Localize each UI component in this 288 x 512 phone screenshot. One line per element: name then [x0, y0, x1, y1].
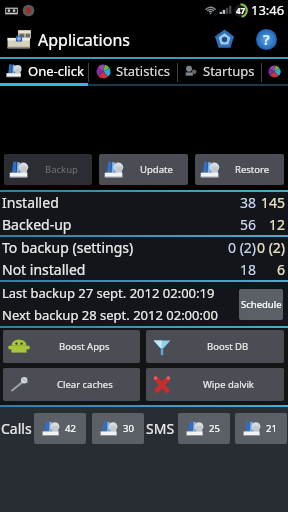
- staticText: 6: [277, 260, 286, 279]
- staticText: Restore: [235, 163, 270, 176]
- staticText: Not installed: [2, 260, 86, 279]
- staticText: Wipe dalvik: [203, 378, 254, 391]
- button[interactable]: Installed: [0, 192, 288, 213]
- button[interactable]: Update: [99, 154, 188, 185]
- button[interactable]: Help: [246, 20, 286, 59]
- button[interactable]: Wipe dalvik: [146, 368, 284, 401]
- button[interactable]: To backup (settings): [0, 237, 288, 258]
- button[interactable]: 21: [235, 413, 287, 444]
- staticText: Update: [140, 163, 173, 176]
- staticText: SMS: [146, 419, 175, 438]
- staticText: 145: [261, 193, 286, 212]
- staticText: Installed: [2, 193, 59, 212]
- staticText: 38: [240, 193, 257, 212]
- staticText: 42: [65, 422, 76, 435]
- button[interactable]: 42: [34, 413, 86, 444]
- staticText: 30: [123, 422, 134, 435]
- button[interactable]: Backed-up: [0, 213, 288, 235]
- staticText: Statistics: [116, 62, 170, 80]
- staticText: Boost DB: [207, 340, 249, 353]
- button[interactable]: Schedule: [239, 289, 283, 320]
- staticText: 25: [209, 422, 220, 435]
- button[interactable]: 25: [178, 413, 230, 444]
- staticText: 56: [240, 215, 257, 234]
- staticText: 47: [236, 5, 246, 16]
- staticText: Backup: [45, 163, 78, 176]
- staticText: 0 (2): [257, 238, 286, 257]
- staticText: Next backup 28 sept. 2012 02:00:00: [2, 306, 218, 324]
- button[interactable]: Startups: [177, 59, 261, 86]
- staticText: Boost Apps: [59, 340, 110, 353]
- staticText: To backup (settings): [2, 238, 134, 257]
- button[interactable]: Clear caches: [3, 368, 140, 401]
- staticText: Backed-up: [2, 215, 72, 234]
- staticText: 18: [240, 260, 257, 279]
- staticText: Startups: [203, 62, 255, 80]
- staticText: 0 (2): [228, 238, 257, 257]
- staticText: Calls: [1, 419, 32, 438]
- button[interactable]: 30: [92, 413, 144, 444]
- staticText: 21: [266, 422, 277, 435]
- button[interactable]: Tools: [202, 20, 246, 59]
- button[interactable]: Restore: [195, 154, 284, 185]
- button[interactable]: Boost DB: [146, 330, 284, 363]
- staticText: Schedule: [241, 298, 282, 311]
- staticText: 12: [269, 215, 286, 234]
- button[interactable]: Boost Apps: [3, 330, 140, 363]
- staticText: ?: [263, 30, 270, 49]
- button[interactable]: One-click: [0, 59, 88, 86]
- button[interactable]: Statistics: [88, 59, 177, 86]
- staticText: One-click: [28, 62, 84, 80]
- button[interactable]: Backup: [4, 154, 92, 185]
- button[interactable]: Not installed: [0, 258, 288, 280]
- staticText: Clear caches: [57, 378, 113, 391]
- staticText: 13:46: [251, 1, 285, 19]
- button[interactable]: [261, 59, 288, 86]
- staticText: Last backup 27 sept. 2012 02:00:19: [2, 284, 215, 302]
- staticText: Applications: [38, 29, 130, 51]
